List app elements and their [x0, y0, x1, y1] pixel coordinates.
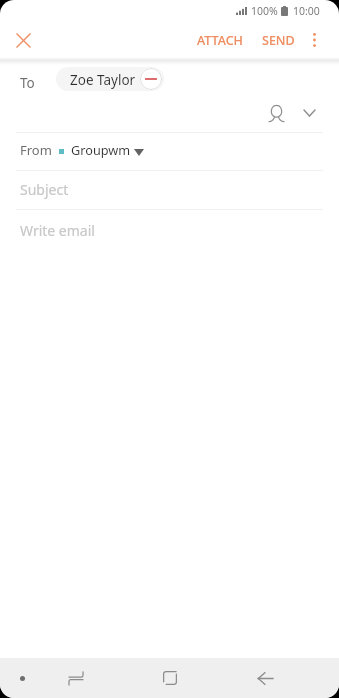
staticText: ATTACH	[197, 32, 243, 48]
staticText: Subject	[20, 180, 69, 199]
staticText: SEND	[262, 32, 295, 48]
staticText: 100%	[251, 4, 278, 18]
button[interactable]: ATTACH	[189, 23, 251, 57]
button[interactable]: Back	[243, 658, 288, 698]
button[interactable]: From	[20, 131, 339, 168]
button[interactable]: Recents	[53, 658, 98, 698]
button[interactable]: Close	[3, 23, 43, 57]
staticText: Zoe Taylor	[70, 71, 136, 89]
button[interactable]: Home	[147, 658, 192, 698]
staticText: Groupwm	[71, 141, 131, 158]
button[interactable]: Expand recipients	[295, 99, 323, 127]
button[interactable]: SEND	[251, 23, 302, 57]
button[interactable]: Subject	[0, 170, 339, 209]
staticText: To	[20, 74, 35, 92]
button[interactable]: Zoe Taylor	[56, 67, 164, 91]
button[interactable]: More options	[299, 25, 329, 55]
button[interactable]: Write email	[0, 209, 339, 248]
staticText: From	[20, 141, 52, 159]
button[interactable]: Contacts	[260, 97, 292, 129]
staticText: Write email	[20, 221, 95, 240]
staticText: 10:00	[293, 4, 320, 18]
button[interactable]: Remove recipient Zoe Taylor	[140, 68, 162, 90]
